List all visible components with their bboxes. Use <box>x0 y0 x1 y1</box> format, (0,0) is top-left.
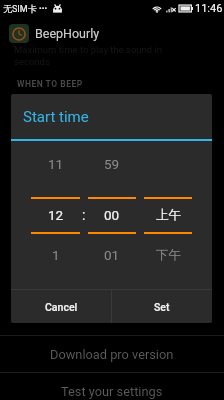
staticText: Set <box>154 301 170 313</box>
staticText: 下午 <box>156 247 181 263</box>
staticText: 01 <box>104 247 120 263</box>
staticText: BeepHourly <box>35 26 100 41</box>
button[interactable]: 1 <box>31 234 80 276</box>
button[interactable]: 59 <box>88 141 136 187</box>
staticText: 1 <box>52 247 60 263</box>
staticText: 59 <box>104 156 120 172</box>
staticText: : <box>82 207 86 223</box>
staticText: WHEN TO BEEP <box>17 79 83 89</box>
button[interactable]: 下午 <box>144 234 192 276</box>
staticText: Start time <box>23 108 89 126</box>
button[interactable]: Download pro version <box>0 336 224 372</box>
staticText: 00 <box>104 207 120 223</box>
button[interactable]: Test your settings <box>0 373 224 400</box>
staticText: 11 <box>48 156 64 172</box>
staticText: 上午 <box>156 207 181 223</box>
staticText: 12 <box>48 207 64 223</box>
staticText: 11:46 <box>195 2 223 15</box>
button[interactable]: 01 <box>88 234 136 276</box>
staticText: 无SIM卡 <box>3 3 37 14</box>
staticText: Test your settings <box>61 384 163 399</box>
staticText: Cancel <box>45 301 78 313</box>
staticText: Maximum time to play the sound in second… <box>14 44 163 67</box>
button[interactable]: 11 <box>31 141 80 187</box>
button[interactable]: 00 <box>88 199 136 231</box>
button[interactable]: 上午 <box>144 199 192 231</box>
staticText: ••• <box>39 4 48 13</box>
button[interactable]: 12 <box>31 199 80 231</box>
button[interactable]: Set <box>112 290 212 323</box>
staticText: Download pro version <box>50 347 174 362</box>
button[interactable]: Cancel <box>11 290 111 323</box>
